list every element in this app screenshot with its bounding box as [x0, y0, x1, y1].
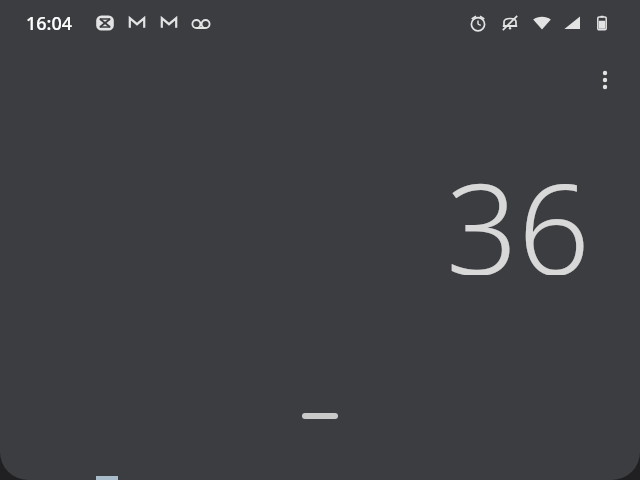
staticText: 36 — [446, 140, 590, 275]
button[interactable]: 36 — [430, 140, 605, 275]
button[interactable]: More options — [585, 60, 625, 100]
staticText: 16:04 — [26, 11, 73, 36]
